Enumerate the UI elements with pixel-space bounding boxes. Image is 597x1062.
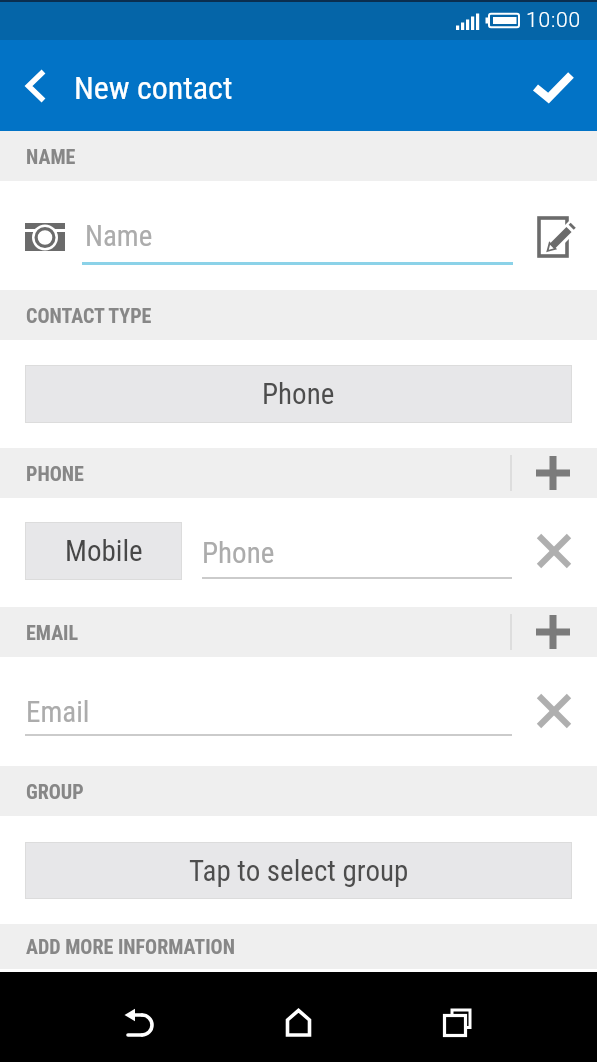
staticText: NAME	[26, 145, 76, 168]
button[interactable]: Mobile	[25, 522, 182, 580]
staticText: Email	[26, 695, 90, 729]
staticText: PHONE	[26, 462, 84, 485]
staticText: GROUP	[26, 780, 84, 803]
staticText: Name	[85, 219, 153, 253]
staticText: ADD MORE INFORMATION	[26, 935, 235, 958]
button[interactable]	[406, 972, 506, 1062]
staticText: New contact	[74, 69, 233, 107]
button[interactable]	[0, 40, 66, 131]
button[interactable]	[10, 208, 80, 266]
button[interactable]	[511, 607, 597, 657]
button[interactable]	[509, 40, 597, 131]
button[interactable]	[522, 679, 586, 743]
button[interactable]	[248, 972, 348, 1062]
staticText: CONTACT TYPE	[26, 304, 152, 327]
staticText: 10:00	[526, 8, 582, 33]
staticText: Tap to select group	[189, 854, 409, 888]
button[interactable]: Tap to select group	[25, 842, 572, 899]
button[interactable]	[511, 448, 597, 498]
staticText: EMAIL	[26, 621, 79, 644]
button[interactable]: Phone	[25, 365, 572, 423]
button[interactable]	[522, 519, 586, 583]
staticText: Mobile	[65, 534, 143, 568]
button[interactable]	[524, 205, 588, 267]
staticText: Phone	[202, 536, 275, 570]
button[interactable]	[89, 972, 189, 1062]
staticText: Phone	[262, 377, 335, 411]
